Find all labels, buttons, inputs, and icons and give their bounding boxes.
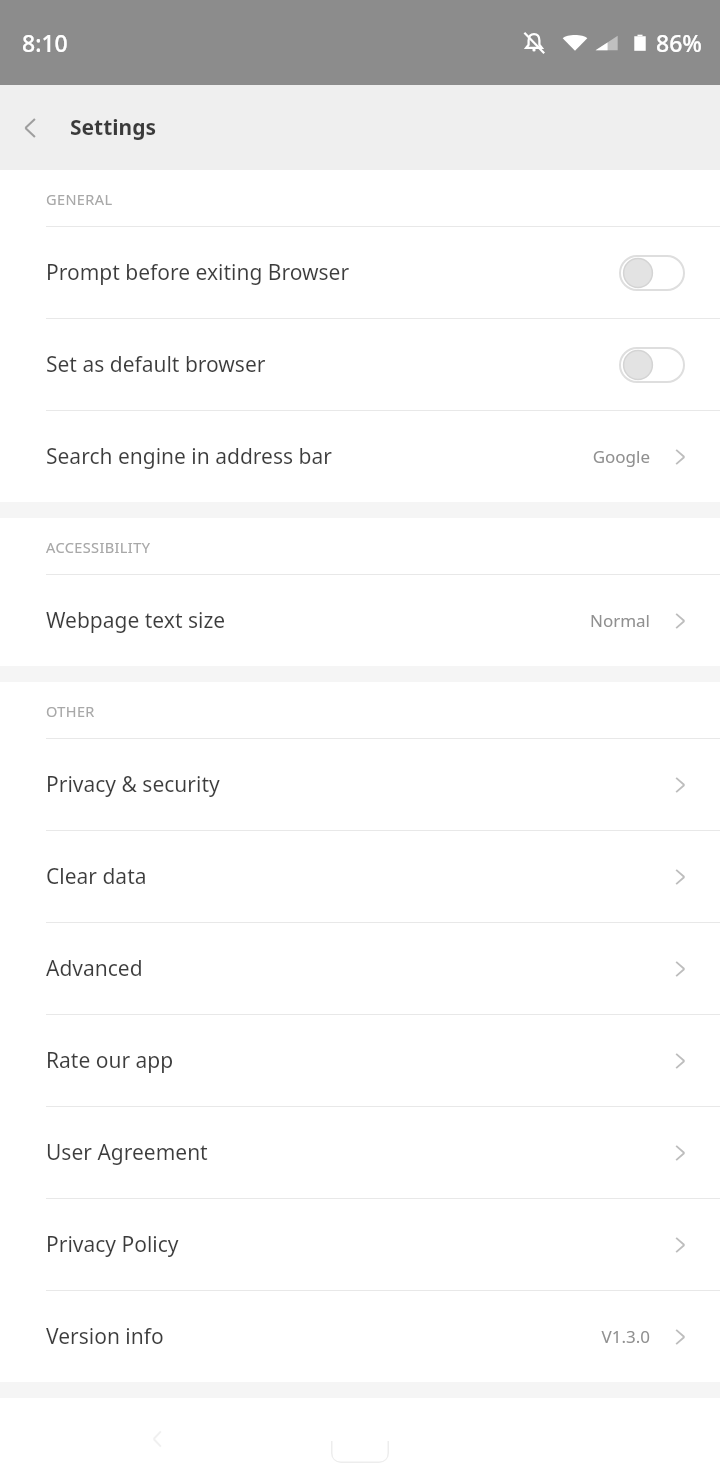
button[interactable]: Back: [0, 97, 62, 159]
button[interactable]: Set as default browser: [0, 319, 720, 410]
staticText: Advanced: [46, 954, 143, 983]
button[interactable]: Privacy & security: [0, 739, 720, 830]
button[interactable]: Privacy Policy: [0, 1199, 720, 1290]
staticText: Settings: [70, 113, 157, 142]
staticText: Prompt before exiting Browser: [46, 258, 350, 287]
staticText: V1.3.0: [601, 1325, 650, 1348]
button[interactable]: Webpage text size: [0, 575, 720, 666]
staticText: GENERAL: [46, 189, 113, 209]
staticText: Set as default browser: [46, 350, 266, 379]
staticText: ACCESSIBILITY: [46, 537, 151, 557]
staticText: User Agreement: [46, 1138, 208, 1167]
staticText: Privacy Policy: [46, 1230, 179, 1259]
staticText: OTHER: [46, 701, 95, 721]
staticText: Search engine in address bar: [46, 442, 332, 471]
button[interactable]: Prompt before exiting Browser: [0, 227, 720, 318]
staticText: Normal: [589, 609, 650, 632]
button[interactable]: Version info: [0, 1291, 720, 1382]
staticText: Rate our app: [46, 1046, 174, 1075]
button[interactable]: User Agreement: [0, 1107, 720, 1198]
staticText: Privacy & security: [46, 770, 220, 799]
staticText: 86%: [656, 27, 702, 58]
staticText: Webpage text size: [46, 606, 226, 635]
button[interactable]: Advanced: [0, 923, 720, 1014]
button[interactable]: Clear data: [0, 831, 720, 922]
button[interactable]: Home: [331, 1441, 389, 1463]
staticText: Clear data: [46, 862, 147, 891]
staticText: Google: [592, 445, 650, 468]
button[interactable]: Search engine in address bar: [0, 411, 720, 502]
staticText: Version info: [46, 1322, 164, 1351]
staticText: 8:10: [22, 27, 68, 58]
button[interactable]: Rate our app: [0, 1015, 720, 1106]
